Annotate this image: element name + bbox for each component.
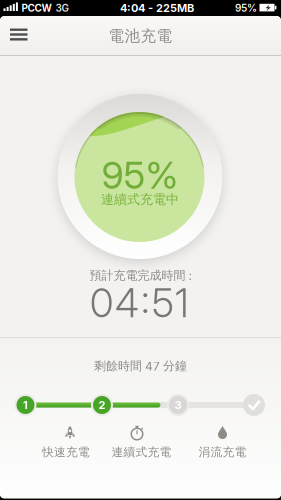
staticText: 涓流充電 <box>198 445 246 459</box>
staticText: 95% <box>101 152 178 198</box>
button[interactable]: 連續式充電 <box>111 423 171 459</box>
staticText: 電池充電 <box>108 26 172 46</box>
staticText: 04:51 <box>90 279 189 327</box>
staticText: 95% <box>235 2 257 14</box>
staticText: 連續式充電 <box>111 445 171 459</box>
staticText: 預計充電完成時間 : <box>89 268 191 283</box>
staticText: PCCW <box>21 2 51 14</box>
staticText: 4:04 - 225MB <box>120 1 194 15</box>
staticText: 1 <box>23 398 28 412</box>
button[interactable]: Menu <box>0 16 38 56</box>
staticText: 剩餘時間 47 分鐘 <box>94 358 187 373</box>
staticText: 快速充電 <box>42 445 90 459</box>
staticText: 連續式充電中 <box>101 191 179 208</box>
button[interactable]: 涓流充電 <box>198 423 246 459</box>
staticText: 3G <box>55 2 68 14</box>
staticText: 3 <box>174 398 181 412</box>
button[interactable]: 快速充電 <box>42 423 90 459</box>
staticText: 2 <box>98 398 105 412</box>
